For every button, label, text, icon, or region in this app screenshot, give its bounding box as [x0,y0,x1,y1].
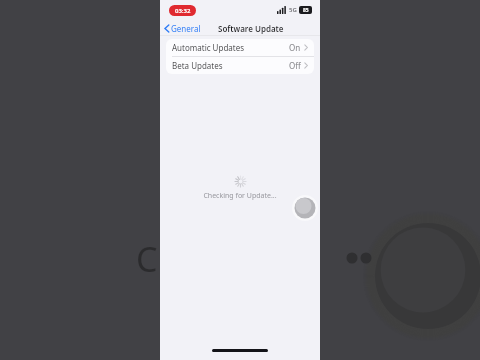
staticText: Checking for Update... [203,191,277,201]
staticText: Automatic Updates [172,42,289,53]
staticText: General [171,23,201,34]
staticText: Software Update [218,23,284,34]
other: Recording, time 03:32 [169,5,196,16]
staticText: On [289,42,301,53]
staticText: C [136,236,158,282]
staticText: 03:32 [175,7,191,15]
staticText: Off [289,60,301,71]
staticText: Beta Updates [172,60,289,71]
button[interactable]: General [164,20,201,36]
staticText: 85 [303,7,309,14]
button[interactable]: Automatic Updates [166,39,314,57]
staticText: 5G [289,6,297,14]
button[interactable]: Beta Updates [166,57,314,74]
